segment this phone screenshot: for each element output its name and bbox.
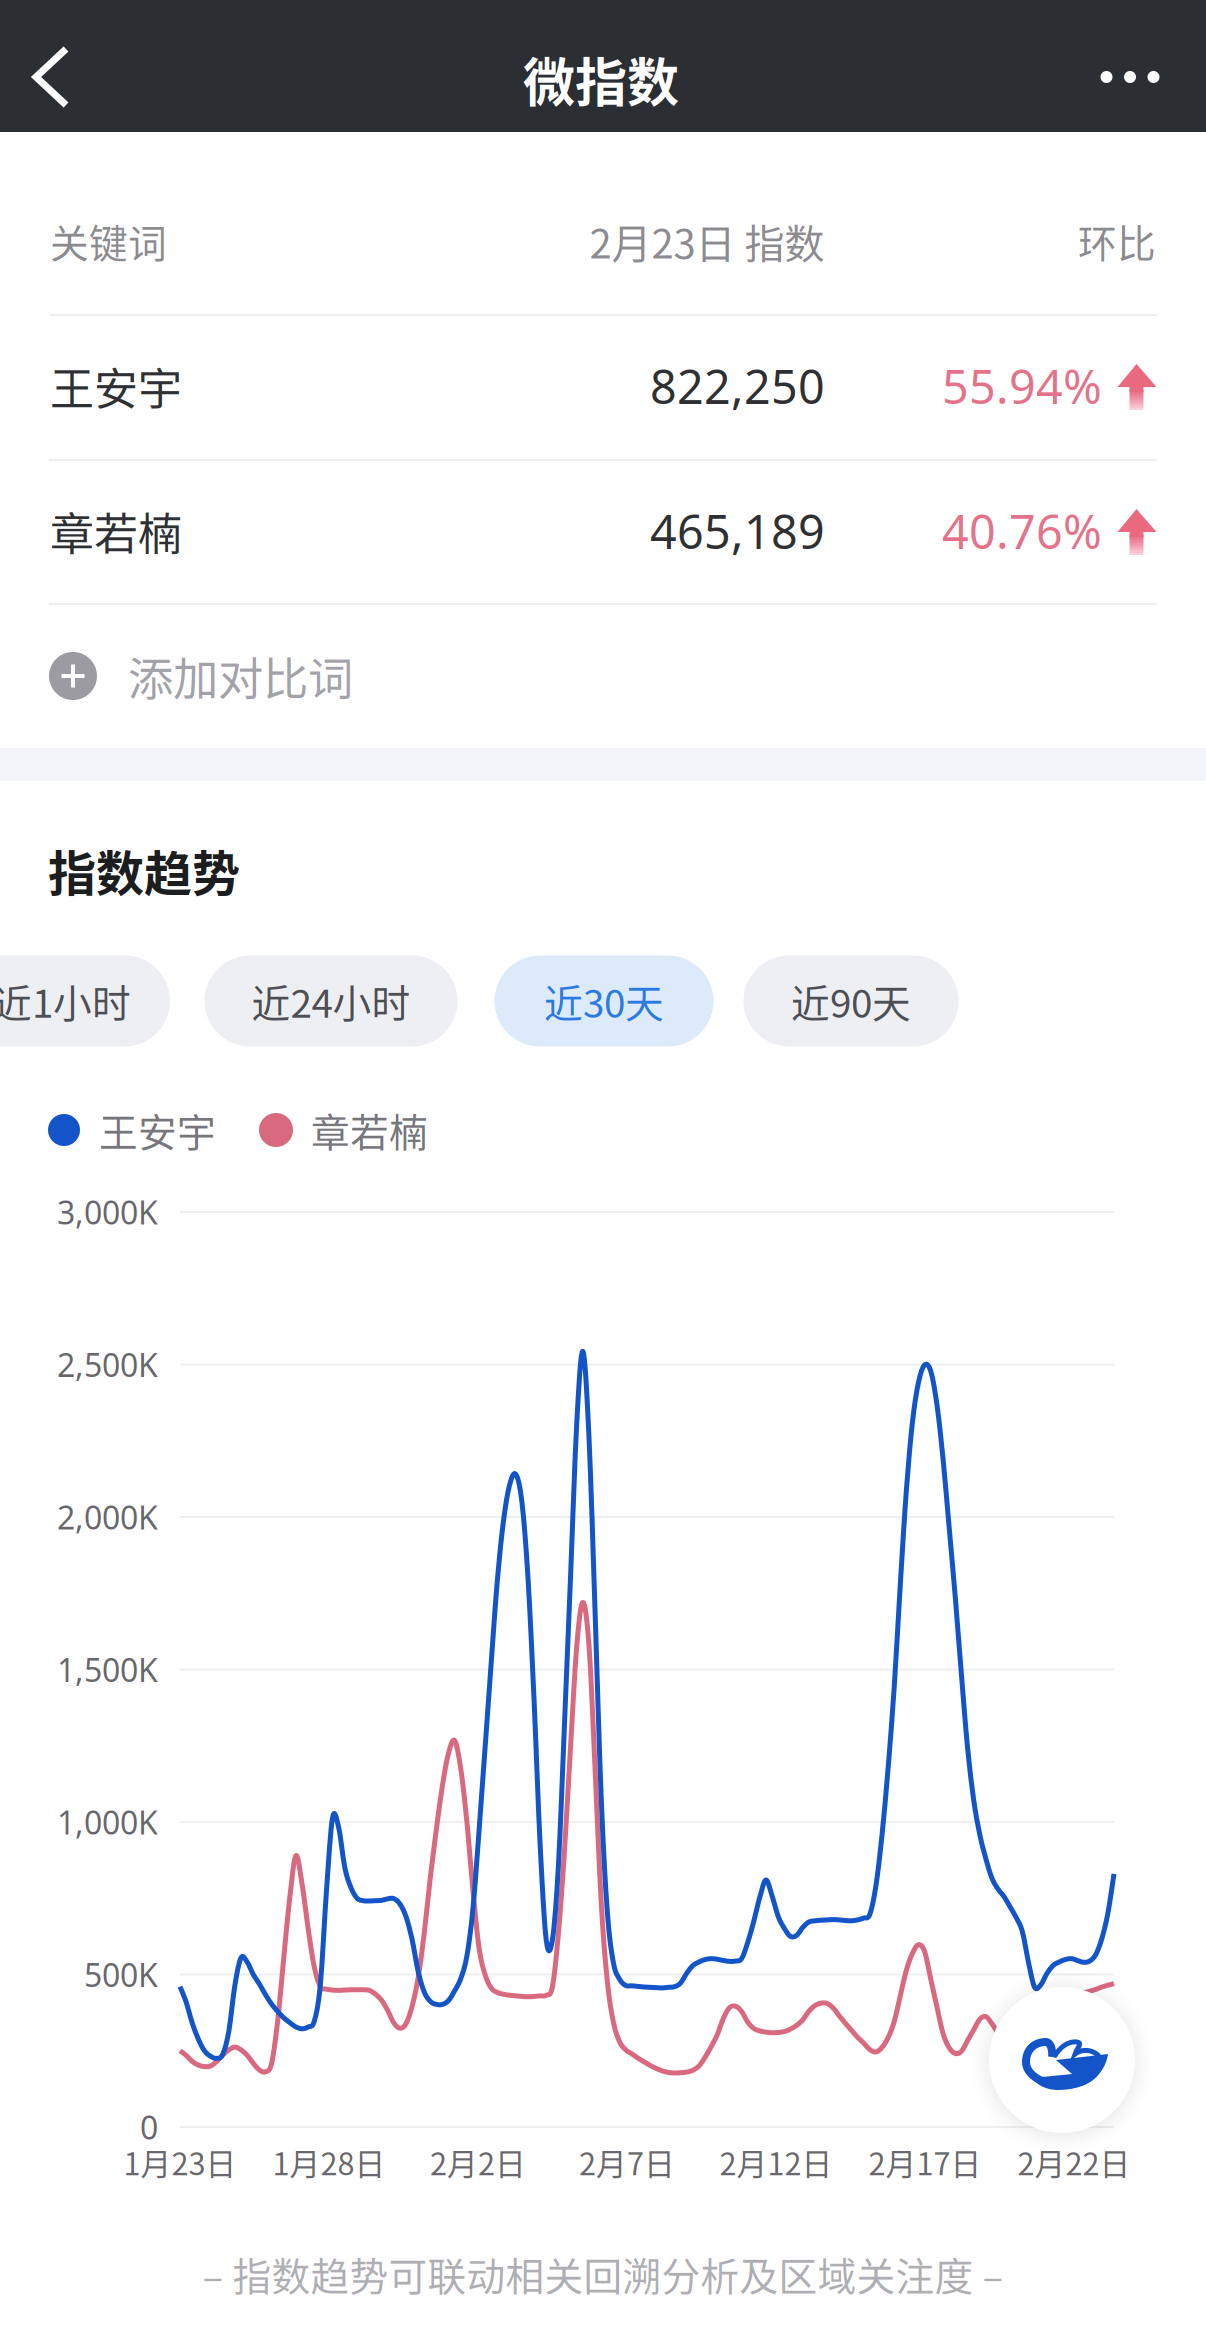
staticText: 近1小时 <box>0 973 131 1029</box>
staticText: 2月7日 <box>579 2140 675 2184</box>
staticText: 465,189 <box>650 499 825 563</box>
staticText: 500K <box>84 1953 158 1996</box>
button[interactable]: 近90天 <box>743 955 958 1046</box>
staticText: 1,500K <box>57 1648 158 1691</box>
button[interactable]: 近24小时 <box>204 955 457 1046</box>
button[interactable]: 近30天 <box>494 955 713 1046</box>
staticText: 近24小时 <box>251 973 410 1029</box>
staticText: 822,250 <box>650 354 825 418</box>
staticText: 2月12日 <box>719 2140 832 2184</box>
staticText: 2,500K <box>57 1343 158 1386</box>
staticText: 指数趋势 <box>48 835 240 905</box>
staticText: 1月23日 <box>123 2140 236 2184</box>
staticText: 王安宇 <box>50 354 182 418</box>
staticText: 1月28日 <box>272 2140 385 2184</box>
button[interactable]: More options <box>1055 11 1205 143</box>
button[interactable]: 章若楠 <box>0 460 1206 606</box>
staticText: 添加对比词 <box>128 643 353 709</box>
button[interactable]: 王安宇 <box>0 315 1206 461</box>
staticText: 王安宇 <box>99 1102 216 1158</box>
staticText: 2月2日 <box>430 2140 526 2184</box>
staticText: – 指数趋势可联动相关回溯分析及区域关注度 – <box>202 2246 1003 2302</box>
staticText: 章若楠 <box>50 499 182 563</box>
staticText: 近90天 <box>791 973 911 1029</box>
staticText: 1,000K <box>57 1800 158 1844</box>
button[interactable]: Back <box>0 11 102 143</box>
staticText: 2月22日 <box>1017 2140 1130 2184</box>
staticText: 2月17日 <box>868 2140 981 2184</box>
button[interactable]: 添加对比词 <box>0 604 1206 748</box>
staticText: 0 <box>140 2105 158 2149</box>
staticText: 3,000K <box>57 1190 158 1234</box>
button[interactable]: 近1小时 <box>0 955 170 1046</box>
staticText: 环比 <box>1078 213 1156 269</box>
staticText: 微指数 <box>523 41 679 117</box>
staticText: 40.76% <box>942 499 1102 563</box>
staticText: 2月23日 指数 <box>589 212 824 270</box>
staticText: 2,000K <box>57 1495 158 1539</box>
staticText: 章若楠 <box>311 1102 428 1158</box>
staticText: 55.94% <box>942 354 1102 418</box>
staticText: 近30天 <box>544 973 664 1029</box>
staticText: 关键词 <box>50 213 167 269</box>
